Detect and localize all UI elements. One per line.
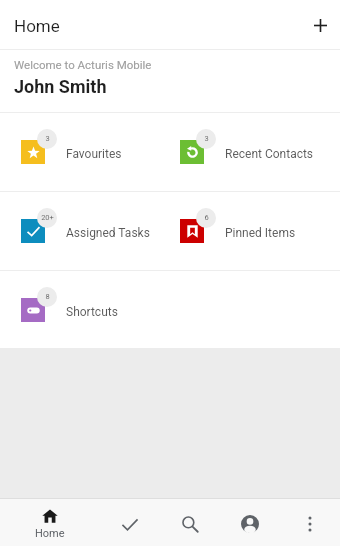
- staticText: 3: [45, 134, 50, 143]
- staticText: Pinned Items: [225, 226, 296, 240]
- staticText: 6: [204, 213, 209, 222]
- staticText: John Smith: [14, 76, 107, 97]
- staticText: Favourites: [66, 147, 122, 161]
- staticText: Recent Contacts: [225, 147, 314, 161]
- staticText: Welcome to Acturis Mobile: [14, 58, 152, 71]
- button[interactable]: 8: [21, 271, 180, 348]
- staticText: 3: [204, 134, 209, 143]
- button[interactable]: Tasks: [100, 499, 160, 546]
- button[interactable]: Home: [0, 499, 100, 546]
- button[interactable]: More options: [280, 499, 340, 546]
- button[interactable]: Account: [220, 499, 280, 546]
- button[interactable]: 3: [21, 113, 180, 191]
- staticText: Shortcuts: [66, 305, 118, 319]
- button[interactable]: 3: [180, 113, 340, 191]
- staticText: Assigned Tasks: [66, 226, 150, 240]
- button[interactable]: 20+: [21, 192, 180, 270]
- button[interactable]: Add: [302, 7, 338, 43]
- staticText: 20+: [41, 213, 54, 222]
- staticText: Home: [14, 16, 60, 36]
- staticText: 8: [45, 292, 50, 301]
- button[interactable]: Search: [160, 499, 220, 546]
- staticText: Home: [35, 527, 65, 540]
- button[interactable]: 6: [180, 192, 340, 270]
